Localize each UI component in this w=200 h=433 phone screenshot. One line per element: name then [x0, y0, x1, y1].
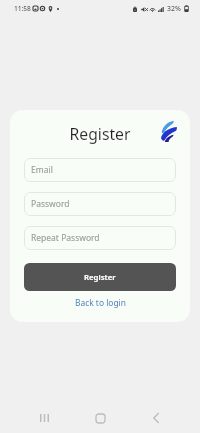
button[interactable]: Back to login [24, 291, 176, 312]
button[interactable]: Recent apps [28, 402, 60, 433]
staticText: 32% [167, 4, 181, 13]
button[interactable]: Home [84, 402, 116, 433]
staticText: Repeat Password [31, 232, 100, 244]
staticText: 11:58 [14, 4, 31, 13]
button[interactable]: Register [24, 263, 176, 291]
staticText: Back to login [75, 297, 126, 308]
button[interactable]: Password [24, 192, 176, 216]
staticText: Email [31, 164, 53, 176]
staticText: Password [31, 198, 70, 210]
button[interactable]: Email [24, 158, 176, 182]
staticText: Register [10, 123, 190, 144]
button[interactable]: Back [140, 402, 172, 433]
button[interactable]: Repeat Password [24, 226, 176, 250]
staticText: Register [84, 272, 116, 283]
